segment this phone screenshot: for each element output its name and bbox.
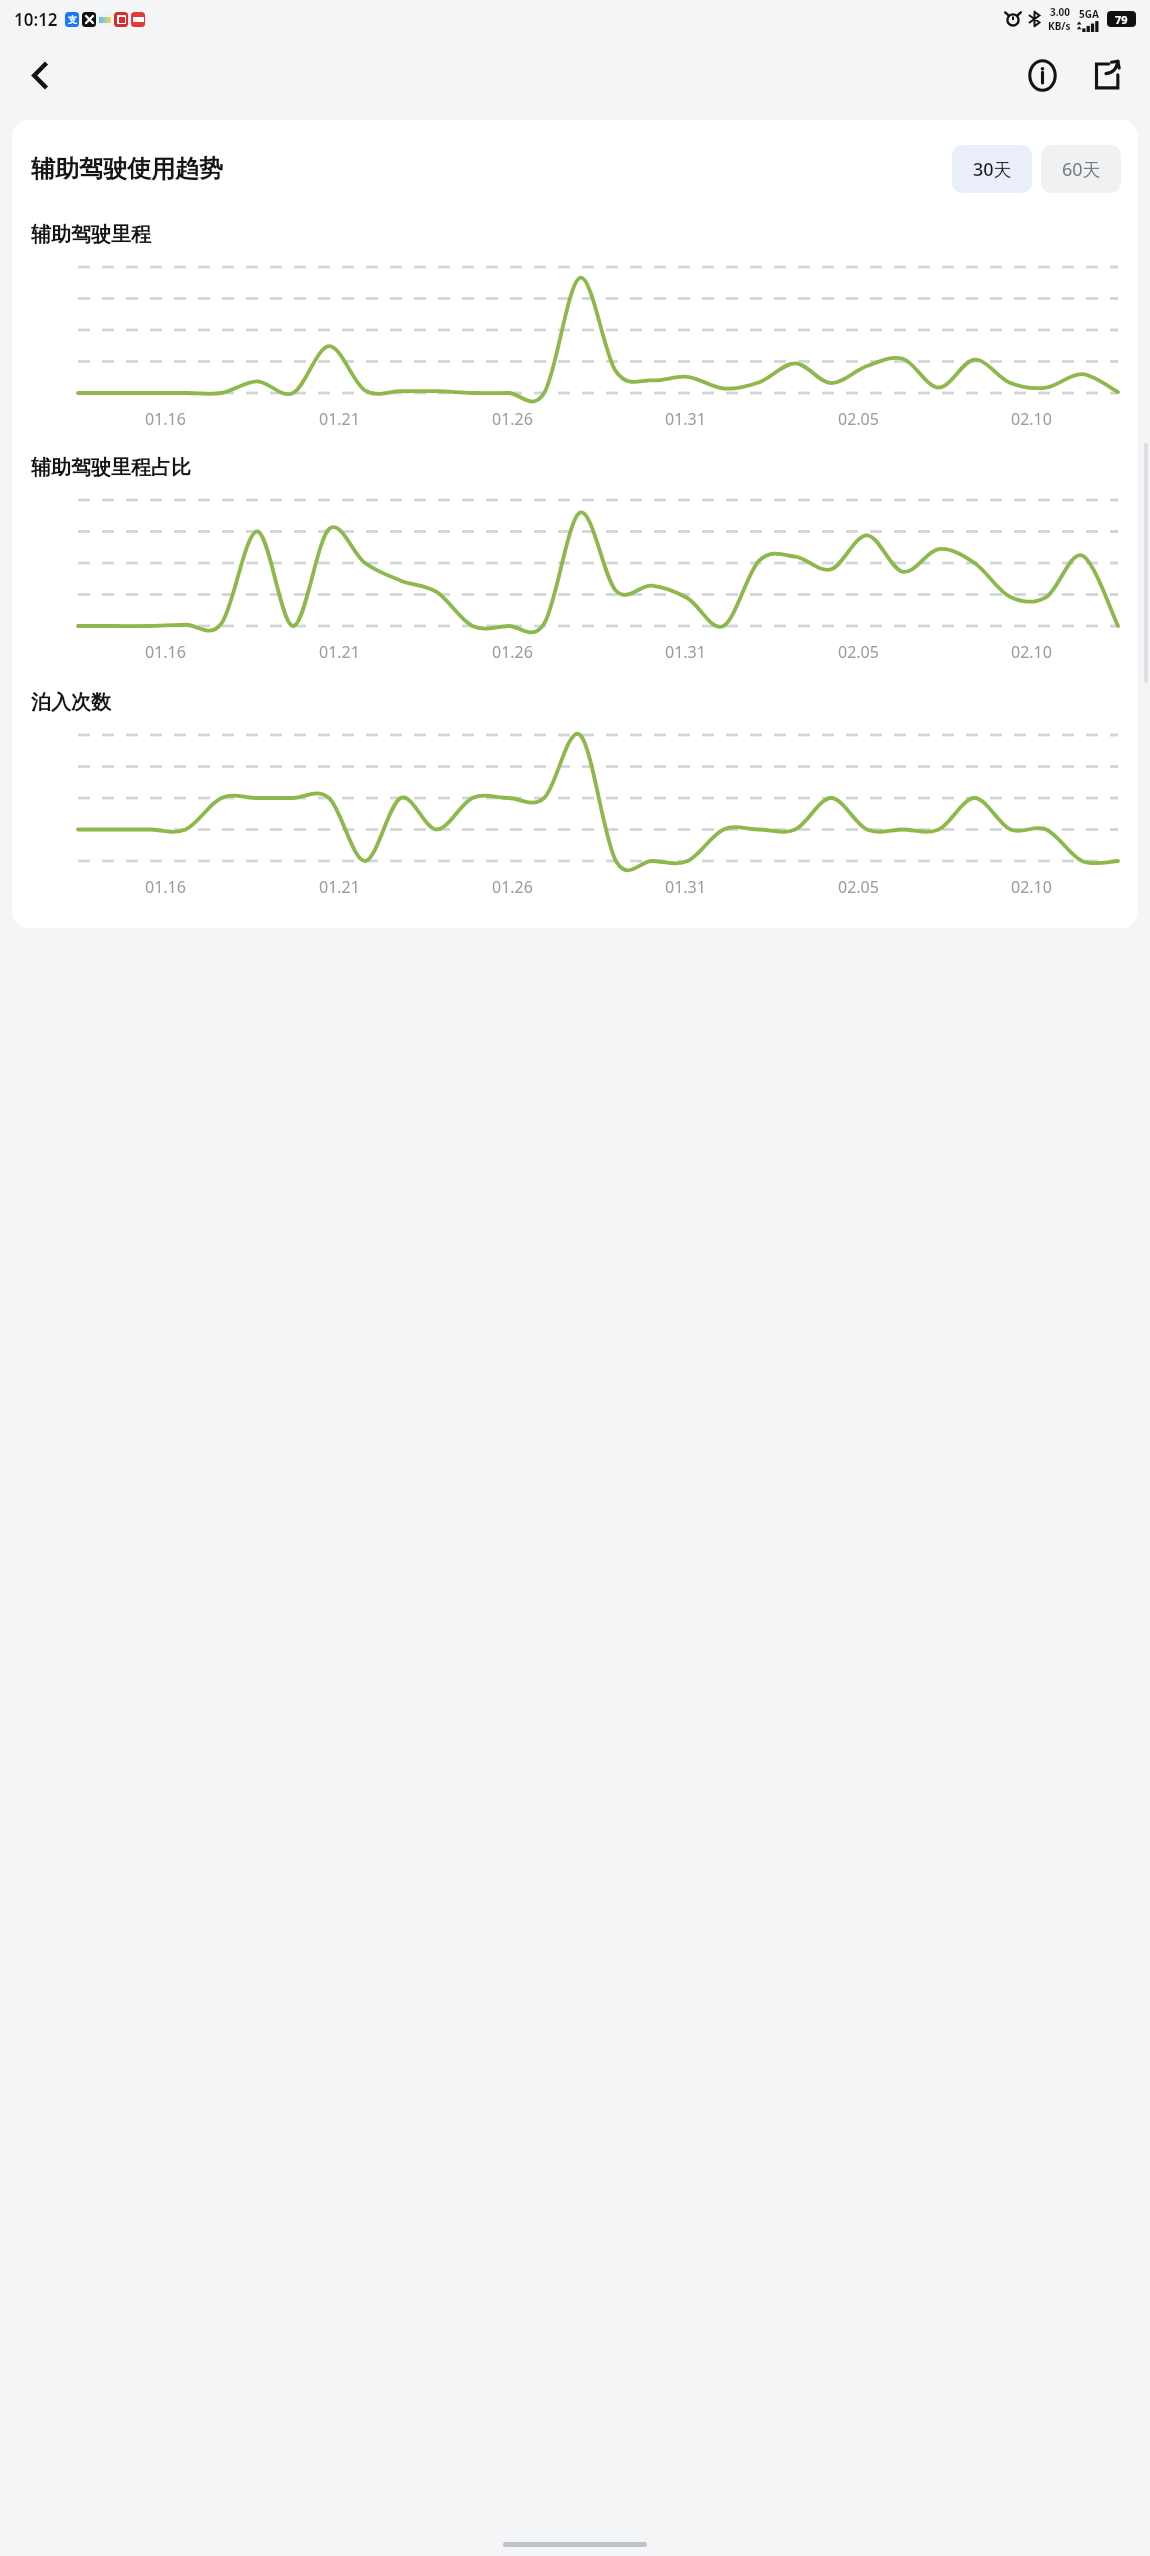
staticText: 01.26 <box>492 408 533 430</box>
staticText: 5GA <box>1079 7 1099 21</box>
staticText: 支 <box>68 14 77 25</box>
button[interactable]: Info <box>1016 49 1068 101</box>
staticText: KB/s <box>1048 19 1071 33</box>
staticText: 01.21 <box>319 876 360 898</box>
staticText: 01.31 <box>665 876 706 898</box>
button[interactable]: Share <box>1080 49 1132 101</box>
staticText: 10:12 <box>14 8 58 31</box>
button[interactable]: 60天 <box>1041 145 1121 193</box>
staticText: 01.31 <box>665 408 706 430</box>
staticText: 辅助驾驶里程 <box>31 222 151 247</box>
staticText: 79 <box>1115 12 1128 27</box>
button[interactable]: Back <box>12 47 68 103</box>
staticText: 01.26 <box>492 641 533 663</box>
button[interactable]: 30天 <box>952 145 1032 193</box>
staticText: 辅助驾驶使用趋势 <box>31 154 223 184</box>
staticText: 02.05 <box>838 641 879 663</box>
staticText: 02.10 <box>1011 876 1052 898</box>
staticText: 30天 <box>973 157 1012 182</box>
staticText: 01.21 <box>319 641 360 663</box>
staticText: 3.00 <box>1050 5 1070 19</box>
staticText: 02.10 <box>1011 408 1052 430</box>
staticText: 01.16 <box>145 641 186 663</box>
staticText: 02.10 <box>1011 641 1052 663</box>
staticText: 02.05 <box>838 408 879 430</box>
staticText: 01.16 <box>145 876 186 898</box>
staticText: 01.16 <box>145 408 186 430</box>
staticText: 辅助驾驶里程占比 <box>31 455 191 480</box>
staticText: 01.21 <box>319 408 360 430</box>
staticText: 泊入次数 <box>31 690 111 715</box>
staticText: 01.26 <box>492 876 533 898</box>
staticText: 01.31 <box>665 641 706 663</box>
staticText: 02.05 <box>838 876 879 898</box>
staticText: 60天 <box>1062 157 1101 182</box>
